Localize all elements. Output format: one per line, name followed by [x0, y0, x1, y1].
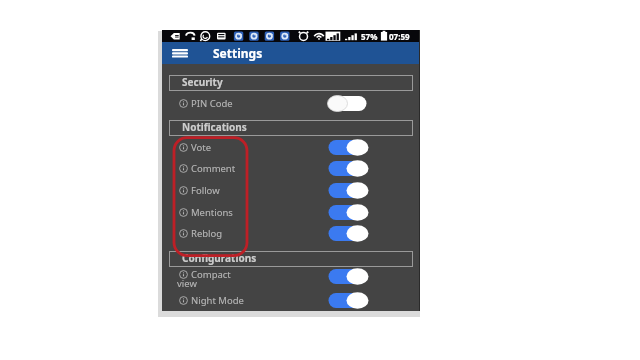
button[interactable]: Notifications: [169, 120, 413, 136]
button[interactable]: Toggle PIN Code: [328, 95, 367, 112]
staticText: Notifications: [182, 120, 247, 134]
button[interactable]: Security: [169, 75, 413, 91]
staticText: Vote: [191, 141, 212, 154]
button[interactable]: Toggle Comment: [328, 160, 367, 177]
staticText: Configurations: [182, 251, 257, 265]
staticText: Reblog: [191, 227, 223, 240]
button[interactable]: Configurations: [169, 251, 413, 267]
button[interactable]: Reblog: [162, 223, 419, 244]
button[interactable]: Toggle Night Mode: [328, 292, 367, 309]
button[interactable]: PIN Code: [162, 93, 419, 114]
button[interactable]: Follow: [162, 180, 419, 201]
staticText: Night Mode: [191, 294, 244, 307]
button[interactable]: Mentions: [162, 202, 419, 223]
button[interactable]: Comment: [162, 158, 419, 179]
button[interactable]: Toggle Compact: [328, 268, 367, 285]
button[interactable]: Toggle Reblog: [328, 225, 367, 242]
staticText: Security: [182, 75, 223, 89]
button[interactable]: Toggle Follow: [328, 182, 367, 199]
button[interactable]: Vote: [162, 137, 419, 158]
staticText: PIN Code: [191, 97, 233, 110]
button[interactable]: Open navigation menu: [168, 42, 192, 64]
staticText: 07:59: [389, 31, 410, 42]
staticText: Follow: [191, 184, 220, 197]
staticText: 57%: [361, 31, 378, 42]
button[interactable]: Compact: [162, 268, 419, 292]
staticText: Mentions: [191, 206, 233, 219]
button[interactable]: Night Mode: [162, 290, 419, 311]
staticText: view: [177, 277, 197, 290]
button[interactable]: Toggle Mentions: [328, 204, 367, 221]
staticText: Comment: [191, 162, 236, 175]
staticText: Compact: [191, 268, 231, 281]
staticText: Settings: [213, 45, 263, 61]
button[interactable]: Toggle Vote: [328, 139, 367, 156]
